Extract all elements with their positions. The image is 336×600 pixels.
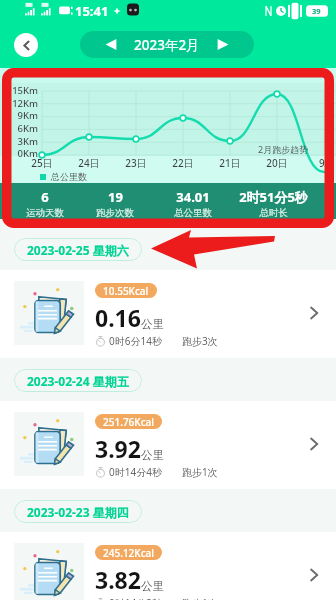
staticText: 0时6分14秒 — [109, 334, 162, 348]
staticText: 总公里数 — [174, 207, 212, 219]
staticText: 6Km — [8, 122, 38, 135]
staticText: 总公里数 — [51, 171, 87, 182]
staticText: 39 — [312, 6, 321, 16]
staticText: 跑步1次 — [182, 596, 218, 600]
staticText: 251.76Kcal — [103, 415, 154, 429]
staticText: 跑步3次 — [182, 334, 218, 348]
staticText: 15Km — [8, 84, 38, 97]
button[interactable]: 2时51分5秒 — [231, 188, 315, 219]
staticText: 10.55Kcal — [103, 284, 149, 298]
staticText: 2023年2月 — [134, 36, 200, 54]
staticText: 总时长 — [259, 207, 288, 219]
button[interactable]: 251.76Kcal — [0, 401, 336, 489]
staticText: 9Km — [8, 109, 38, 122]
staticText: 运动天数 — [26, 207, 64, 219]
staticText: 3.82 — [95, 564, 141, 595]
staticText: 0时14分2秒 — [109, 596, 162, 600]
button[interactable]: 19 — [73, 188, 157, 219]
staticText: 23日 — [120, 156, 152, 170]
staticText: 6 — [41, 188, 49, 206]
staticText: 跑步1次 — [182, 465, 218, 479]
staticText: 20日 — [261, 156, 293, 170]
button[interactable]: 2023年2月 — [80, 31, 254, 58]
staticText: 2时51分5秒 — [239, 188, 308, 206]
staticText: 跑步次数 — [96, 207, 134, 219]
staticText: 0Km — [8, 147, 38, 160]
button[interactable]: 2023-02-24 星期五 — [14, 369, 142, 392]
staticText: 2月跑步趋势 — [258, 143, 309, 155]
staticText: 15:41 — [75, 2, 109, 20]
staticText: 19 — [108, 188, 123, 206]
staticText: 2023-02-24 星期五 — [27, 373, 129, 389]
button[interactable]: 245.12Kcal — [0, 532, 336, 600]
button[interactable]: Open detail — [299, 298, 329, 328]
staticText: 2023-02-25 星期六 — [27, 242, 129, 258]
button[interactable]: 34.01 — [151, 188, 235, 219]
button[interactable]: 2023-02-25 星期六 — [14, 238, 142, 261]
staticText: 245.12Kcal — [103, 546, 154, 560]
staticText: 2023-02-23 星期四 — [27, 504, 129, 520]
staticText: 12Km — [8, 97, 38, 110]
staticText: 25日 — [26, 156, 58, 170]
staticText: 公里 — [141, 448, 164, 462]
button[interactable]: Open detail — [299, 429, 329, 459]
staticText: 3Km — [8, 135, 38, 148]
staticText: 0.16 — [95, 302, 141, 333]
button[interactable]: 10.55Kcal — [0, 270, 336, 358]
staticText: 22日 — [167, 156, 199, 170]
staticText: 9 — [319, 156, 325, 170]
staticText: 24日 — [73, 156, 105, 170]
button[interactable]: 2023-02-23 星期四 — [14, 500, 142, 523]
button[interactable]: Open detail — [299, 560, 329, 590]
button[interactable]: Back — [14, 33, 38, 57]
staticText: 21日 — [214, 156, 246, 170]
staticText: 公里 — [141, 579, 164, 593]
staticText: 3.92 — [95, 433, 141, 464]
button[interactable]: 6 — [3, 188, 87, 219]
staticText: 公里 — [141, 317, 164, 331]
staticText: 0时14分4秒 — [109, 465, 162, 479]
staticText: 34.01 — [176, 188, 210, 206]
